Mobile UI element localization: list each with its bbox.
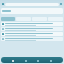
button[interactable]: Explore: [24, 58, 28, 63]
button[interactable]: [1, 37, 63, 41]
button[interactable]: Favorites: [36, 58, 40, 63]
button[interactable]: [1, 32, 63, 36]
button[interactable]: Menu: [2, 3, 4, 5]
button[interactable]: [1, 8, 63, 14]
button[interactable]: [1, 27, 63, 31]
button[interactable]: [1, 22, 63, 26]
button[interactable]: Home: [11, 58, 15, 63]
button[interactable]: Profile: [49, 58, 53, 63]
button[interactable]: Category 1: [1, 17, 15, 21]
